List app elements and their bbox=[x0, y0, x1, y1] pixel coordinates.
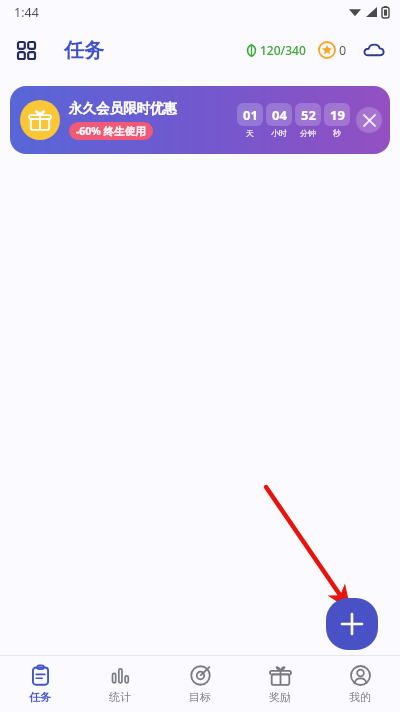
staticText: 奖励 bbox=[269, 690, 291, 704]
staticText: 52 bbox=[301, 106, 316, 124]
button[interactable]: 目标 bbox=[160, 656, 240, 712]
staticText: 统计 bbox=[109, 690, 131, 704]
staticText: 任务 bbox=[64, 38, 104, 63]
staticText: 04 bbox=[272, 106, 287, 124]
staticText: 小时 bbox=[271, 128, 287, 138]
staticText: 19 bbox=[330, 106, 345, 124]
staticText: 0 bbox=[339, 42, 347, 59]
staticText: -60% 终生使用 bbox=[76, 124, 146, 138]
button[interactable]: Menu bbox=[8, 32, 44, 68]
button[interactable]: 我的 bbox=[320, 656, 400, 712]
staticText: 120/340 bbox=[260, 42, 306, 58]
button[interactable]: 任务 bbox=[0, 656, 80, 712]
button[interactable]: Sync bbox=[358, 34, 390, 66]
staticText: 分钟 bbox=[300, 128, 316, 138]
staticText: 任务 bbox=[29, 690, 51, 704]
button[interactable]: Close bbox=[356, 107, 382, 133]
button[interactable]: 奖励 bbox=[240, 656, 320, 712]
button[interactable]: 永久会员限时优惠 bbox=[10, 86, 390, 154]
staticText: 1:44 bbox=[14, 4, 39, 21]
staticText: 永久会员限时优惠 bbox=[69, 100, 177, 117]
button[interactable]: 统计 bbox=[80, 656, 160, 712]
button[interactable]: 120/340 bbox=[243, 38, 308, 62]
staticText: 01 bbox=[243, 106, 258, 124]
staticText: 天 bbox=[246, 128, 254, 138]
staticText: 我的 bbox=[349, 690, 371, 704]
staticText: 秒 bbox=[333, 128, 341, 138]
button[interactable]: 0 bbox=[316, 37, 349, 63]
staticText: 目标 bbox=[189, 690, 211, 704]
button[interactable]: Add task bbox=[326, 598, 378, 650]
